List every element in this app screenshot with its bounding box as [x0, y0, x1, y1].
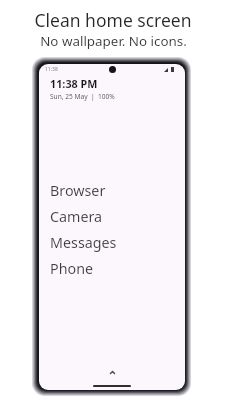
staticText: Phone — [50, 259, 94, 278]
staticText: 11:38 — [45, 66, 58, 73]
staticText: Browser — [50, 181, 106, 200]
button[interactable]: Browser — [50, 177, 185, 203]
staticText: No wallpaper. No icons. — [40, 32, 187, 50]
staticText: Clean home screen — [34, 8, 192, 32]
staticText: Sun, 25 May | 100% — [50, 92, 115, 101]
button[interactable]: Messages — [50, 229, 185, 255]
other: Open app drawer — [110, 371, 115, 374]
button[interactable]: Camera — [50, 203, 185, 229]
staticText: Camera — [50, 207, 103, 226]
button[interactable]: Phone — [50, 255, 185, 281]
staticText: 11:38 PM — [50, 76, 98, 91]
staticText: Messages — [50, 233, 117, 252]
